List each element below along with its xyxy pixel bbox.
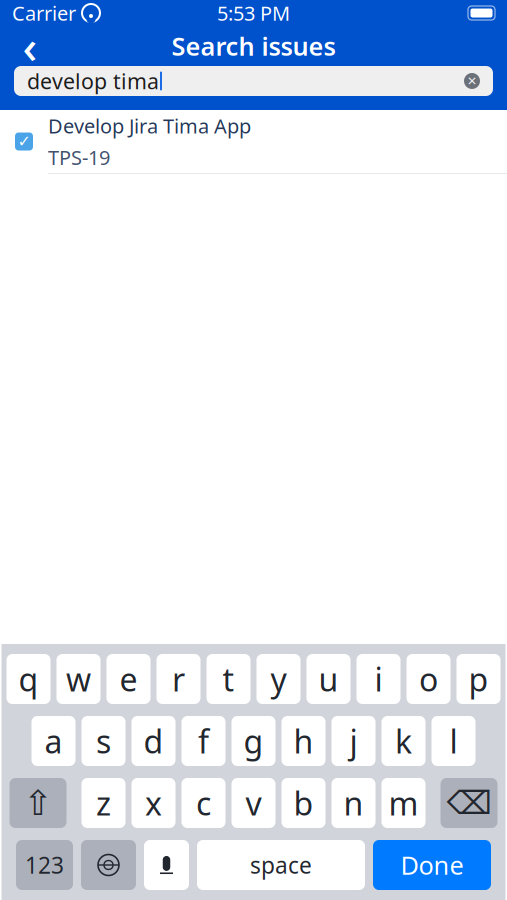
button[interactable]: j bbox=[331, 716, 375, 766]
button[interactable]: h bbox=[281, 716, 325, 766]
button[interactable]: w bbox=[56, 654, 100, 704]
button[interactable]: m bbox=[381, 778, 425, 828]
button[interactable]: c bbox=[181, 778, 225, 828]
staticText: c bbox=[196, 782, 211, 824]
staticText: s bbox=[96, 720, 111, 762]
staticText: u bbox=[318, 658, 338, 700]
staticText: p bbox=[468, 658, 488, 700]
button[interactable]: d bbox=[131, 716, 175, 766]
button[interactable]: f bbox=[181, 716, 225, 766]
button[interactable]: y bbox=[256, 654, 300, 704]
staticText: y bbox=[270, 658, 286, 700]
staticText: ✓ bbox=[17, 132, 30, 151]
button[interactable]: i bbox=[356, 654, 400, 704]
staticText: Done bbox=[400, 848, 463, 882]
button[interactable]: space bbox=[197, 840, 365, 890]
button[interactable]: Dictate bbox=[144, 840, 189, 890]
button[interactable]: p bbox=[456, 654, 500, 704]
staticText: o bbox=[419, 658, 438, 700]
staticText: n bbox=[343, 782, 363, 824]
staticText: b bbox=[293, 782, 313, 824]
staticText: Search issues bbox=[171, 29, 335, 63]
staticText: TPS-19 bbox=[48, 144, 110, 171]
button[interactable]: b bbox=[281, 778, 325, 828]
staticText: d bbox=[143, 720, 163, 762]
staticText: v bbox=[245, 782, 261, 824]
button[interactable]: x bbox=[131, 778, 175, 828]
staticText: f bbox=[198, 720, 209, 762]
staticText: e bbox=[119, 658, 137, 700]
button[interactable]: Shift bbox=[9, 778, 66, 828]
button[interactable]: u bbox=[306, 654, 350, 704]
button[interactable]: t bbox=[206, 654, 250, 704]
button[interactable]: q bbox=[6, 654, 50, 704]
staticText: ⌫ bbox=[446, 785, 491, 821]
staticText: x bbox=[145, 782, 162, 824]
button[interactable]: l bbox=[431, 716, 475, 766]
button[interactable]: s bbox=[81, 716, 125, 766]
button[interactable]: Done bbox=[373, 840, 491, 890]
button[interactable]: Numbers bbox=[16, 840, 73, 890]
staticText: m bbox=[388, 782, 418, 824]
button[interactable]: v bbox=[231, 778, 275, 828]
button[interactable]: n bbox=[331, 778, 375, 828]
staticText: Develop Jira Tima App bbox=[48, 112, 251, 139]
staticText: q bbox=[18, 658, 38, 700]
staticText: ⇧ bbox=[23, 783, 52, 823]
button[interactable]: develop tima bbox=[14, 66, 493, 96]
button[interactable]: Next keyboard bbox=[81, 840, 136, 890]
staticText: 5:53 PM bbox=[217, 0, 290, 26]
button[interactable]: o bbox=[406, 654, 450, 704]
button[interactable]: z bbox=[81, 778, 125, 828]
staticText: 123 bbox=[25, 850, 64, 880]
staticText: j bbox=[349, 720, 357, 762]
button[interactable]: r bbox=[156, 654, 200, 704]
staticText: l bbox=[449, 720, 457, 762]
staticText: develop tima bbox=[27, 67, 159, 95]
button[interactable]: Delete bbox=[440, 778, 497, 828]
button[interactable]: e bbox=[106, 654, 150, 704]
button[interactable]: Back bbox=[8, 26, 52, 66]
button[interactable]: g bbox=[231, 716, 275, 766]
button[interactable]: a bbox=[31, 716, 75, 766]
staticText: h bbox=[293, 720, 313, 762]
staticText: k bbox=[395, 720, 412, 762]
staticText: w bbox=[66, 658, 91, 700]
staticText: t bbox=[222, 658, 234, 700]
staticText: Carrier bbox=[12, 0, 76, 26]
staticText: ‹ bbox=[22, 16, 37, 76]
button[interactable]: ✓ bbox=[0, 110, 507, 173]
staticText: ✕ bbox=[467, 74, 477, 88]
staticText: i bbox=[374, 658, 382, 700]
staticText: space bbox=[250, 850, 312, 880]
button[interactable]: k bbox=[381, 716, 425, 766]
staticText: z bbox=[96, 782, 111, 824]
staticText: g bbox=[243, 720, 263, 762]
staticText: a bbox=[44, 720, 62, 762]
staticText: r bbox=[172, 658, 185, 700]
